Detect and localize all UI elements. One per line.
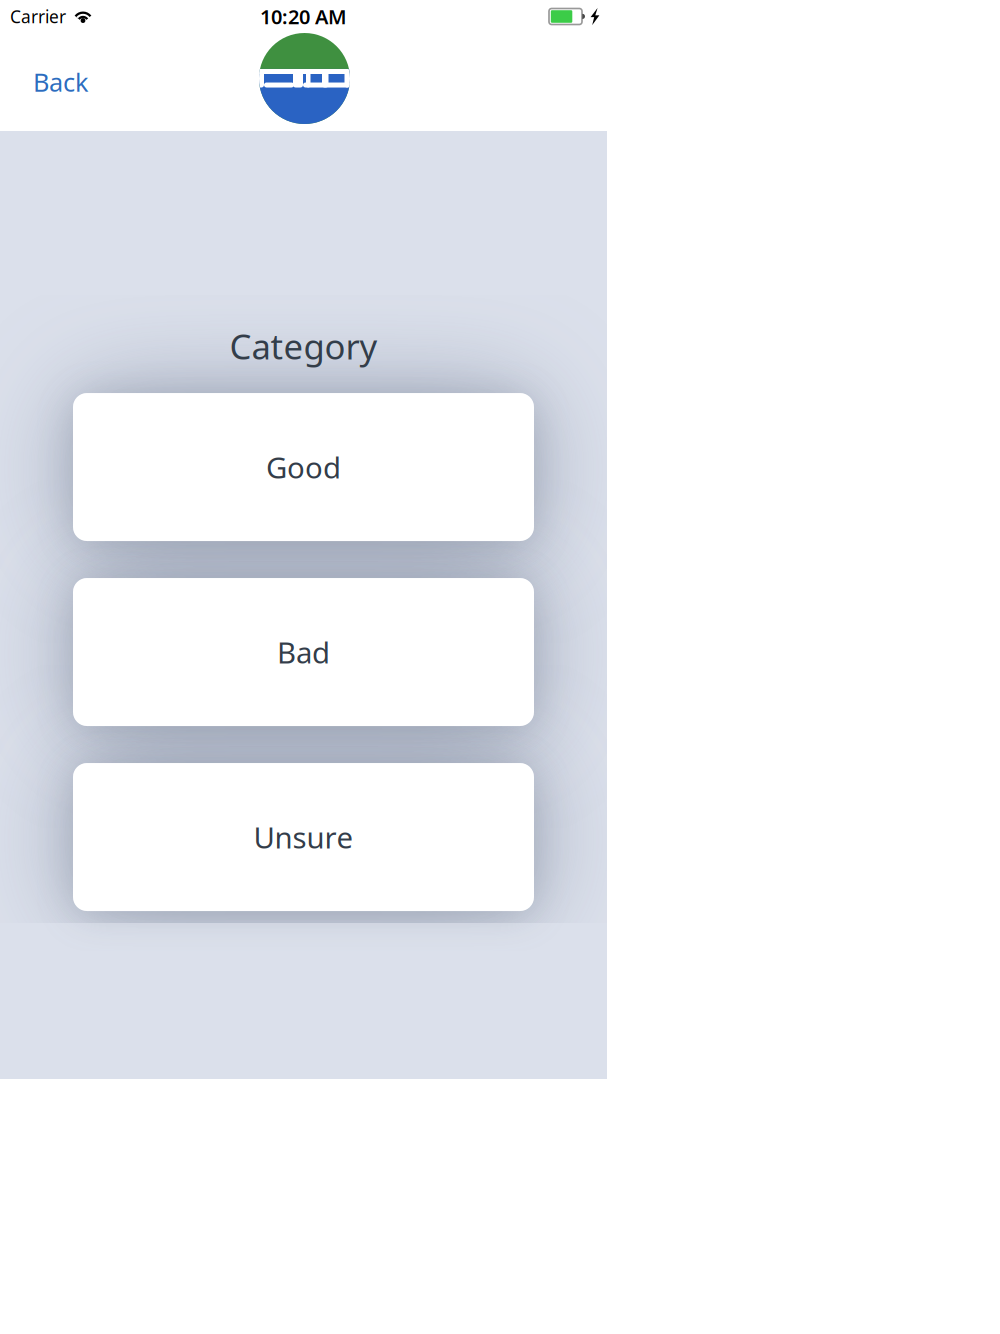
staticText: Carrier: [10, 5, 66, 28]
button[interactable]: Back: [0, 33, 109, 131]
button[interactable]: Bad: [73, 578, 534, 726]
staticText: Category: [229, 323, 377, 369]
button[interactable]: Unsure: [73, 763, 534, 911]
staticText: Good: [266, 448, 341, 487]
button[interactable]: Good: [73, 393, 534, 541]
staticText: Unsure: [253, 818, 353, 857]
staticText: 10:20 AM: [260, 3, 347, 30]
staticText: Bad: [277, 633, 330, 672]
staticText: Back: [33, 65, 89, 99]
